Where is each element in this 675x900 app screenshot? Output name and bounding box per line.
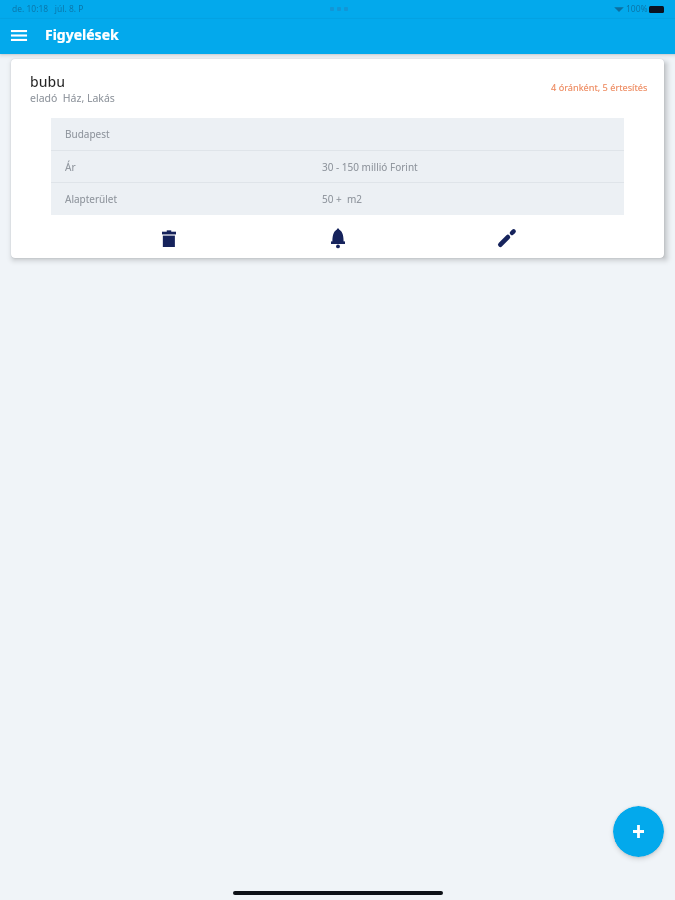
staticText: 50 + m2 — [322, 192, 363, 206]
button[interactable]: Notifications — [324, 224, 352, 252]
staticText: Budapest — [65, 127, 110, 141]
button[interactable]: bubu — [11, 59, 664, 105]
staticText: Alapterület — [65, 192, 118, 206]
staticText: 100% — [626, 3, 648, 15]
button[interactable]: Menu — [6, 22, 32, 48]
button[interactable]: Add — [613, 806, 664, 857]
button[interactable]: Edit — [492, 224, 520, 252]
staticText: 30 - 150 millió Forint — [322, 160, 418, 174]
staticText: bubu — [30, 72, 65, 91]
staticText: 4 óránként, 5 értesítés — [551, 81, 648, 94]
staticText: Figyelések — [45, 25, 119, 44]
staticText: de. 10:18 júl. 8. P — [12, 3, 84, 15]
button[interactable]: Delete — [155, 224, 183, 252]
staticText: eladó Ház, Lakás — [30, 91, 115, 105]
staticText: Ár — [65, 160, 76, 174]
